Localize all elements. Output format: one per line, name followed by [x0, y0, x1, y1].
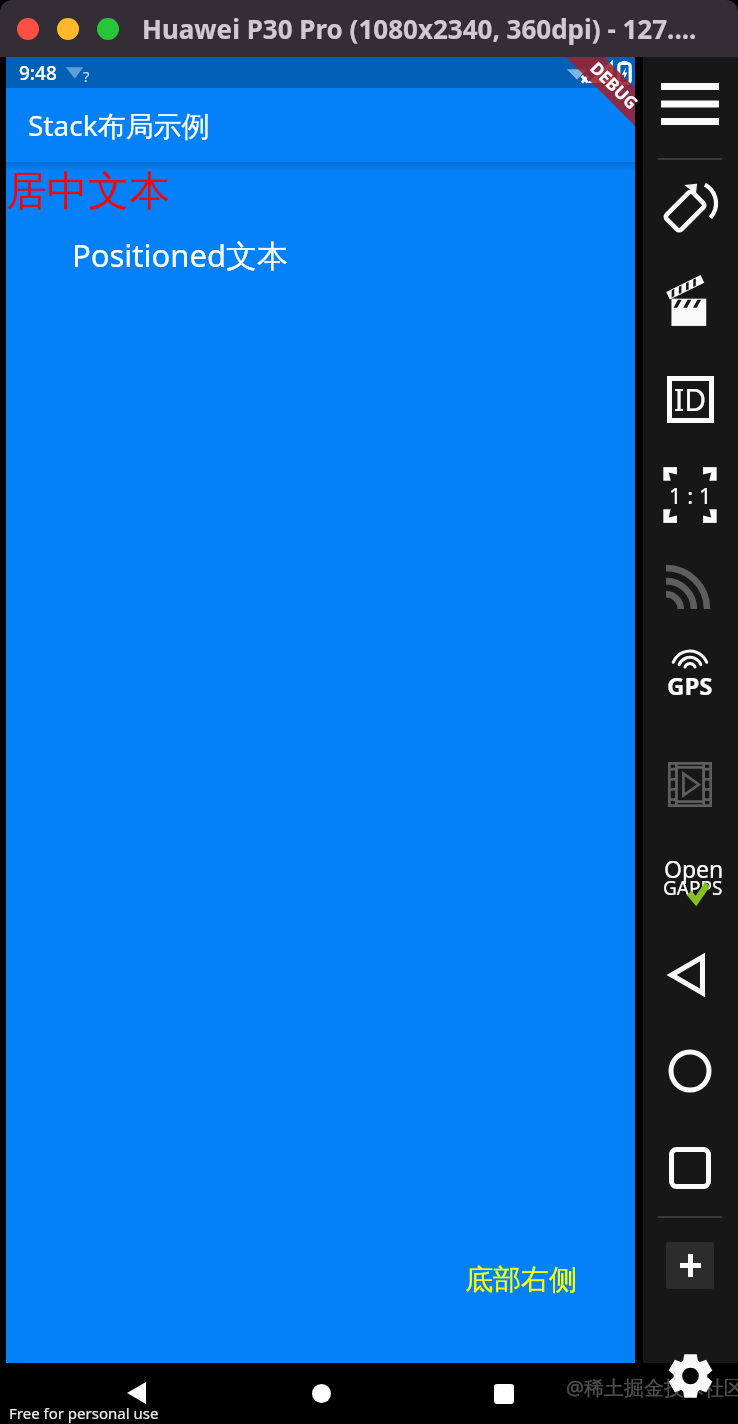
staticText: 1 : 1 [669, 480, 712, 510]
staticText: @稀土掘金技术社区 [566, 1374, 738, 1401]
button[interactable]: Record video [650, 748, 730, 820]
staticText: GPS [667, 669, 713, 702]
button[interactable]: Open GApps [650, 846, 730, 916]
button[interactable]: Screen record [650, 265, 730, 337]
button[interactable]: GPS [650, 648, 730, 720]
button[interactable]: Maximise window [97, 18, 119, 40]
button[interactable]: Recent apps [650, 1132, 730, 1204]
button[interactable]: Cellular [646, 552, 726, 624]
button[interactable]: Back [647, 939, 727, 1011]
button[interactable]: Home [299, 1371, 344, 1416]
button[interactable]: Settings [650, 1340, 730, 1412]
staticText: GAPPS [663, 875, 723, 901]
staticText: Huawei P30 Pro (1080x2340, 360dpi) - 127… [142, 11, 697, 46]
button[interactable]: Actual size [650, 459, 730, 531]
staticText: 居中文本 [6, 166, 170, 218]
staticText: Stack布局示例 [28, 106, 210, 144]
staticText: 底部右侧 [465, 1262, 577, 1297]
staticText: Open [664, 853, 724, 884]
button[interactable]: Back [114, 1370, 159, 1415]
staticText: ID [674, 379, 707, 420]
button[interactable]: Menu [650, 68, 730, 140]
button[interactable]: Device ID [650, 363, 730, 435]
staticText: Free for personal use [9, 1403, 159, 1423]
button[interactable]: Rotate [650, 171, 730, 243]
button[interactable]: Recent apps [481, 1371, 526, 1416]
staticText: 9:48 [19, 60, 57, 86]
button[interactable]: Home [650, 1035, 730, 1107]
staticText: Positioned文本 [72, 234, 289, 276]
button[interactable]: Close window [17, 18, 39, 40]
staticText: DEBUG [585, 56, 643, 114]
staticText: ? [83, 66, 90, 86]
button[interactable]: Add device [666, 1242, 714, 1289]
button[interactable]: Minimise window [57, 18, 79, 40]
